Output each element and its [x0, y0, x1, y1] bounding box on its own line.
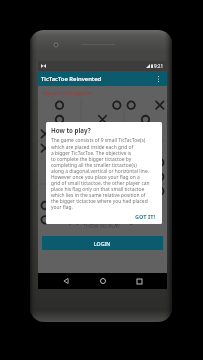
button[interactable]: LOGIN [42, 236, 163, 250]
staticText: LOGIN [94, 240, 111, 247]
staticText: HOW TO PLAY [86, 222, 120, 229]
button[interactable]: More options [152, 71, 165, 86]
staticText: TicTacToe Reinvented [41, 75, 102, 83]
button[interactable]: Recent apps [131, 273, 147, 289]
staticText: GOT IT! [135, 213, 155, 221]
button[interactable]: Home [95, 273, 111, 289]
button[interactable]: Back [58, 273, 74, 289]
button[interactable]: HOW TO PLAY [38, 220, 167, 231]
staticText: The game consists of 9 small TicTacToe(s… [51, 137, 150, 210]
staticText: 9:21 [154, 63, 164, 69]
staticText: How to play? [51, 126, 91, 134]
staticText: You are not logged in [42, 90, 93, 97]
button[interactable]: GOT IT! [133, 211, 157, 223]
